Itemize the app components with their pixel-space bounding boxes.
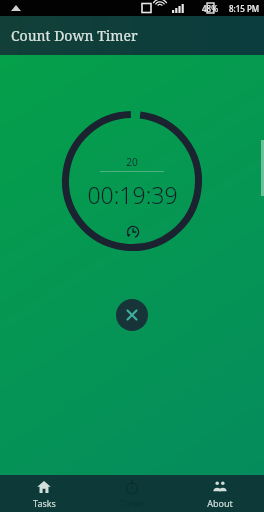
staticText: About (207, 497, 233, 509)
button[interactable]: Cancel timer (116, 299, 148, 331)
staticText: 48% (202, 3, 218, 14)
button[interactable]: 20 (61, 110, 203, 252)
staticText: 00:19:39 (87, 179, 178, 210)
button[interactable]: About (176, 475, 264, 512)
staticText: Tasks (33, 497, 56, 509)
staticText: Count Down Timer (11, 26, 138, 45)
button[interactable]: Tasks (0, 475, 88, 512)
staticText: 20 (126, 155, 138, 169)
staticText: 8:15 PM (229, 3, 260, 14)
button[interactable]: History (121, 220, 143, 242)
